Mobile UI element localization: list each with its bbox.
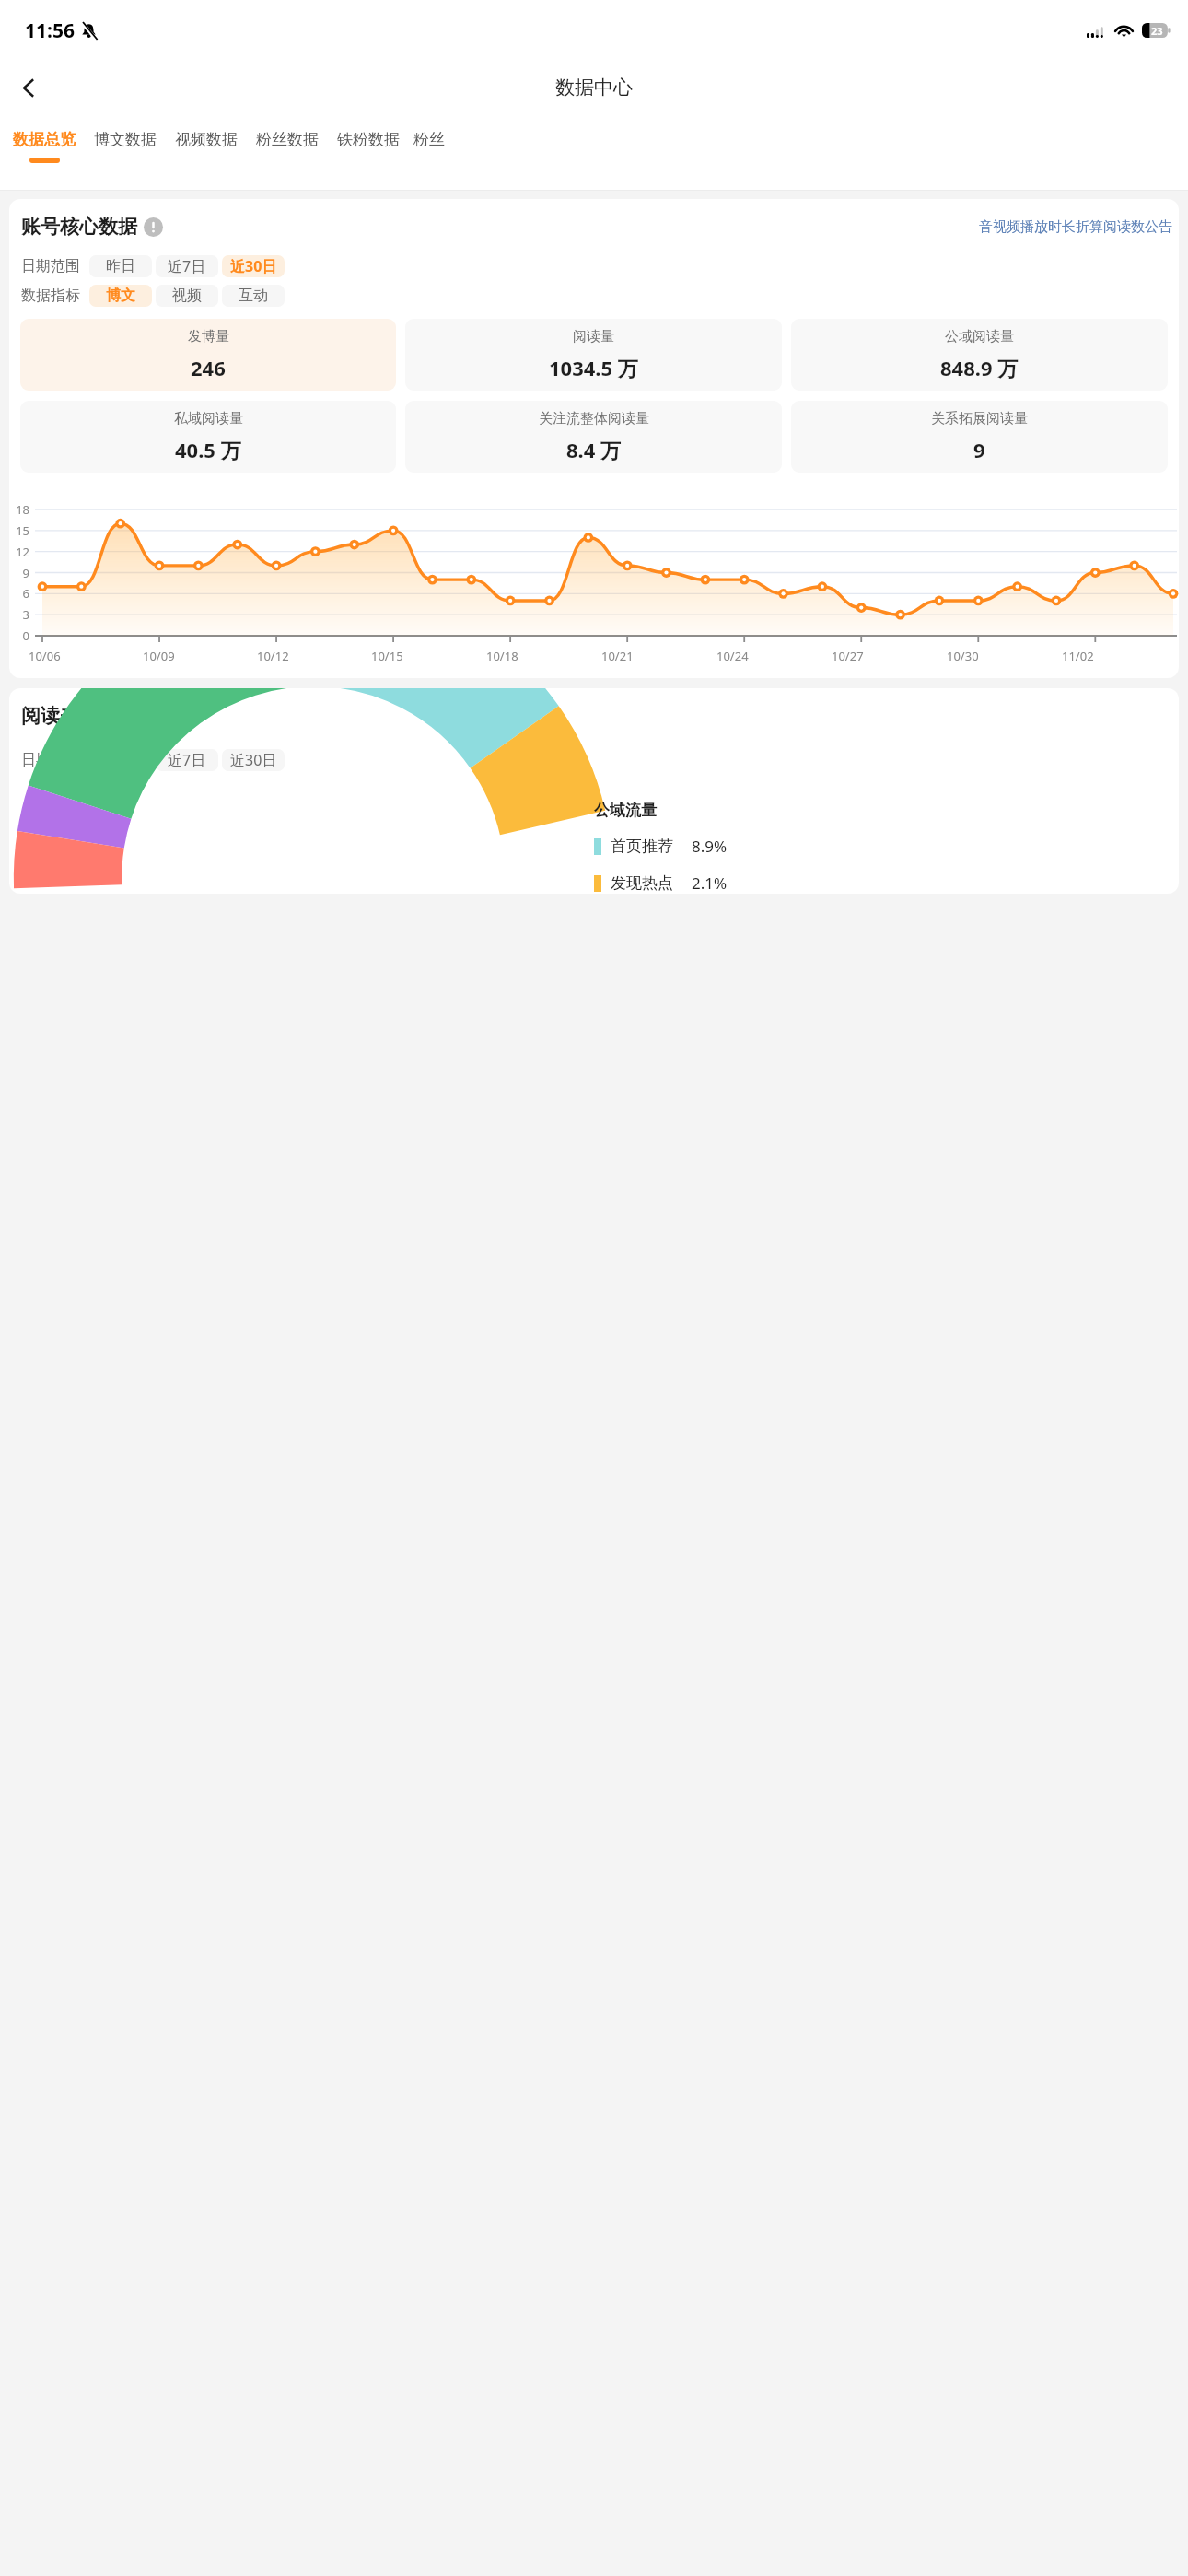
button[interactable]: 关注流整体阅读量 [405, 401, 782, 473]
button[interactable]: 关系拓展阅读量 [791, 401, 1168, 473]
staticText: 18 [9, 501, 29, 518]
button[interactable]: 粉丝数据 [247, 116, 328, 190]
staticText: 10/15 [371, 648, 403, 664]
staticText: 发现热点 [611, 873, 673, 893]
staticText: 粉丝 [413, 130, 445, 149]
button[interactable]: 发博量 [20, 319, 396, 391]
staticText: 账号核心数据 [21, 215, 137, 239]
staticText: 关注流整体阅读量 [539, 410, 649, 427]
staticText: 10/18 [486, 648, 518, 664]
button[interactable]: Back [4, 63, 53, 112]
button[interactable]: 粉丝 [409, 116, 449, 190]
staticText: 昨日 [106, 257, 135, 275]
staticText: 公域流量 [594, 801, 657, 820]
staticText: 日期范围 [21, 751, 80, 769]
staticText: 首页推荐 [611, 837, 673, 856]
button[interactable]: 视频 [156, 285, 218, 307]
staticText: 246 [191, 354, 226, 381]
staticText: 公域阅读量 [945, 328, 1014, 345]
button[interactable]: 近7日 [156, 749, 218, 771]
staticText: 数据中心 [555, 76, 633, 100]
staticText: 8.9% [692, 836, 728, 857]
staticText: 近30日 [230, 750, 277, 770]
staticText: 互动 [239, 287, 268, 305]
staticText: 10/30 [947, 648, 979, 664]
staticText: 近7日 [168, 256, 206, 276]
staticText: 10/12 [257, 648, 289, 664]
button[interactable]: 阅读量 [405, 319, 782, 391]
staticText: 12 [9, 544, 29, 560]
staticText: 10/24 [716, 648, 749, 664]
button[interactable]: 数据总览 [4, 116, 85, 190]
button[interactable]: 说明 [144, 217, 163, 237]
button[interactable]: 音视频播放时长折算阅读数公告 [979, 218, 1172, 236]
button[interactable]: 首页推荐 [594, 836, 728, 857]
staticText: 11/02 [1062, 648, 1094, 664]
button[interactable]: 近30日 [222, 749, 285, 771]
button[interactable]: 近30日 [222, 255, 285, 277]
staticText: 848.9 万 [940, 354, 1019, 381]
staticText: 10/27 [832, 648, 864, 664]
staticText: 阅读来源场景 [21, 704, 137, 728]
button[interactable]: 昨日 [89, 255, 152, 277]
button[interactable]: 近7日 [156, 255, 218, 277]
staticText: 2.1% [692, 872, 728, 894]
staticText: 15 [9, 522, 29, 539]
staticText: 关系拓展阅读量 [931, 410, 1028, 427]
button[interactable]: 发现热点 [594, 872, 728, 894]
staticText: 3 [9, 606, 29, 623]
staticText: 博文数据 [94, 130, 157, 149]
staticText: 40.5 万 [175, 436, 241, 463]
staticText: 23 [1151, 24, 1163, 38]
staticText: 日期范围 [21, 257, 80, 275]
staticText: 数据指标 [21, 287, 80, 305]
staticText: 铁粉数据 [337, 130, 400, 149]
staticText: 10/09 [143, 648, 175, 664]
staticText: 粉丝数据 [256, 130, 319, 149]
staticText: 视频数据 [175, 130, 238, 149]
staticText: 8.4 万 [566, 436, 622, 463]
staticText: 10/21 [601, 648, 634, 664]
button[interactable]: 互动 [222, 285, 285, 307]
staticText: 近30日 [230, 256, 277, 276]
staticText: 阅读量 [573, 328, 614, 345]
button[interactable]: 私域阅读量 [20, 401, 396, 473]
button[interactable]: 博文 [89, 285, 152, 307]
staticText: 1034.5 万 [549, 354, 638, 381]
button[interactable]: 公域阅读量 [791, 319, 1168, 391]
button[interactable]: 博文数据 [85, 116, 166, 190]
staticText: 近7日 [168, 750, 206, 770]
staticText: 10/06 [29, 648, 61, 664]
staticText: 9 [9, 565, 29, 581]
staticText: 博文 [106, 287, 135, 305]
staticText: 11:56 [25, 18, 75, 44]
staticText: 0 [9, 627, 29, 644]
button[interactable]: 视频数据 [166, 116, 247, 190]
staticText: 6 [9, 585, 29, 602]
staticText: 数据总览 [13, 130, 76, 149]
button[interactable]: 铁粉数据 [328, 116, 409, 190]
staticText: 视频 [172, 287, 202, 305]
staticText: 9 [973, 436, 985, 463]
staticText: 私域阅读量 [174, 410, 243, 427]
staticText: 发博量 [188, 328, 229, 345]
